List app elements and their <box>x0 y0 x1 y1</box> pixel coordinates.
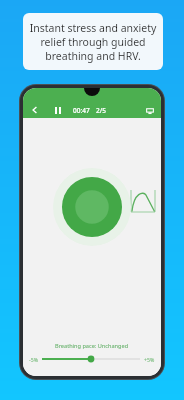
staticText: -5% <box>29 356 38 363</box>
button[interactable]: Back <box>28 103 42 117</box>
button[interactable]: Instant stress and anxiety relief throug… <box>23 13 163 70</box>
staticText: 2/5 <box>96 106 106 115</box>
staticText: +5% <box>144 356 155 363</box>
staticText: 00:47 <box>73 106 90 115</box>
button[interactable]: Pause <box>51 103 65 117</box>
button[interactable]: Breathing circle <box>53 168 131 246</box>
button[interactable]: Sensor <box>143 104 156 117</box>
button[interactable]: -5% <box>29 354 155 364</box>
staticText: Breathing pace: Unchanged <box>55 342 129 350</box>
staticText: Instant stress and anxiety relief throug… <box>29 21 157 63</box>
